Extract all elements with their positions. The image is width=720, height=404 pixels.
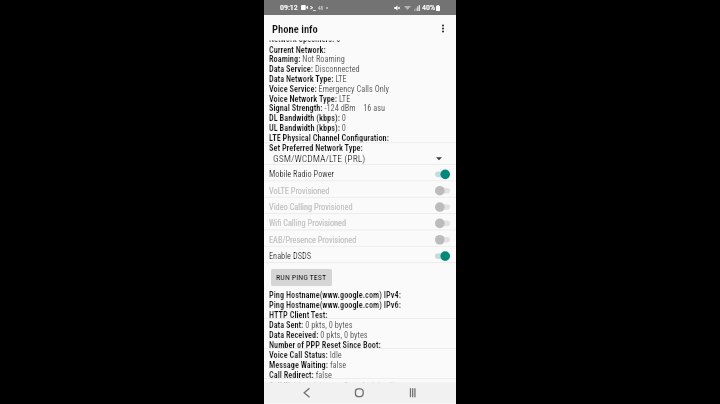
staticText: 09:12 [280,3,298,12]
staticText: Voice Service: Emergency Calls Only [269,84,390,94]
staticText: Signal Strength: -124 dBm 16 asu [269,103,386,113]
staticText: Mobile Radio Power [269,169,335,179]
staticText: UL Bandwidth (kbps): 0 [269,123,346,133]
button[interactable]: VoLTE Provisioned [264,183,456,199]
staticText: RUN PING TEST [276,273,327,282]
staticText: EAB/Presence Provisioned [269,235,357,245]
staticText: Message Waiting: false [269,360,347,370]
staticText: 48 [318,5,323,11]
staticText: LTE Physical Channel Configuration: [269,133,389,143]
staticText: Call Redirect: false [269,370,332,380]
button[interactable]: Enable DSDS [264,248,456,264]
staticText: Voice Call Status: Idle [269,350,342,360]
staticText: Data Received: 0 pkts, 0 bytes [269,330,368,340]
button[interactable]: Recent apps [397,382,427,403]
button[interactable]: Video Calling Provisioned [264,199,456,215]
staticText: Ping Hostname(www.google.com) IPv4: [269,290,401,300]
staticText: Voice Network Type: LTE [269,93,351,103]
button[interactable]: Wifi Calling Provisioned [264,215,456,231]
staticText: Roaming: Not Roaming [269,54,345,64]
button[interactable]: More options [435,20,451,36]
staticText: Enable DSDS [269,251,311,261]
button[interactable]: EAB/Presence Provisioned [264,232,456,248]
staticText: Phone info [272,22,318,34]
staticText: GSM/WCDMA/LTE (PRL) [273,153,366,164]
button[interactable]: RUN PING TEST [271,269,332,286]
staticText: VoLTE Provisioned [269,186,330,196]
staticText: Current Network: [269,44,326,54]
staticText: Wifi Calling Provisioned [269,218,347,228]
staticText: Data Service: Disconnected [269,64,360,74]
staticText: Set Preferred Network Type: [269,142,363,152]
staticText: >_ [310,4,316,12]
button[interactable]: GSM/WCDMA/LTE (PRL) [264,151,456,165]
button[interactable]: Home [344,382,374,403]
staticText: Data Network Type: LTE [269,74,347,84]
staticText: 40% [422,3,435,12]
staticText: Number of PPP Reset Since Boot: [269,340,381,350]
staticText: Data Sent: 0 pkts, 0 bytes [269,320,353,330]
staticText: Video Calling Provisioned [269,202,353,212]
staticText: Call Waiting: false Data Activity: None [269,381,407,391]
staticText: HTTP Client Test: [269,310,328,320]
staticText: Ping Hostname(www.google.com) IPv6: [269,300,401,310]
staticText: Network Specifiers: 0 [269,34,341,44]
button[interactable]: Back [291,382,321,403]
button[interactable]: Mobile Radio Power [264,166,456,182]
staticText: DL Bandwidth (kbps): 0 [269,113,346,123]
